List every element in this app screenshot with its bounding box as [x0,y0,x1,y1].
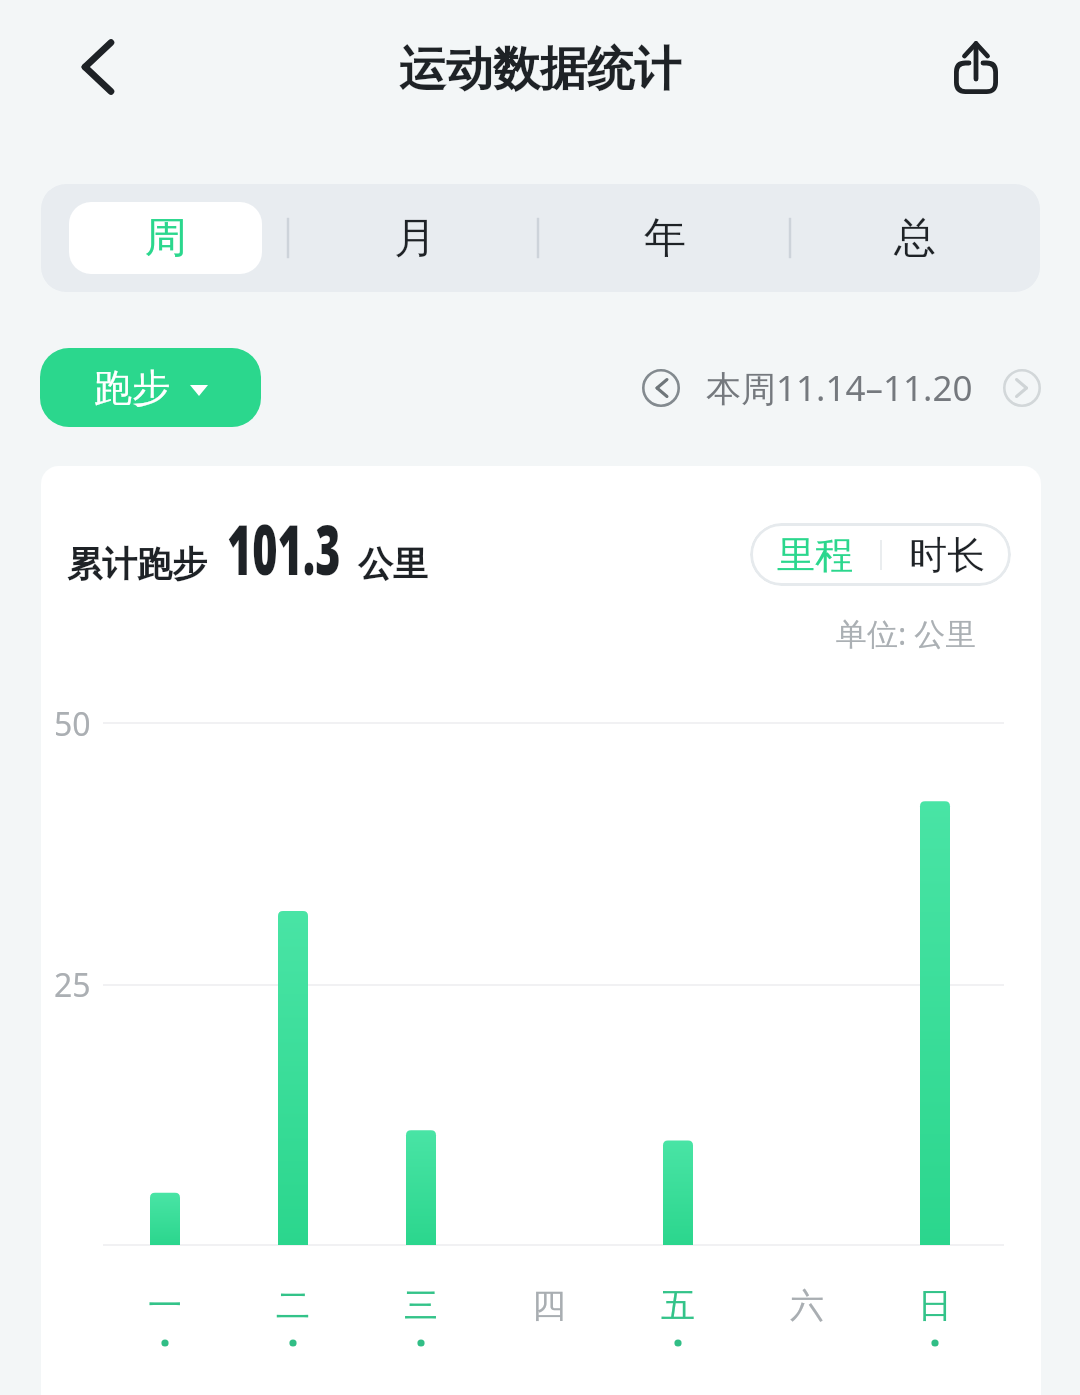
button[interactable]: 二 [261,1266,325,1361]
staticText: 四 [532,1284,566,1327]
staticText: 月 [394,212,436,265]
staticText: 累计跑步 [67,542,207,586]
button[interactable]: 年 [568,202,762,274]
button[interactable]: 五 [646,1266,710,1361]
staticText: 本周11.14–11.20 [706,364,973,412]
staticText: 一 [148,1284,182,1327]
button[interactable]: 六 [775,1266,839,1361]
staticText: 日 [918,1284,952,1327]
staticText: 运动数据统计 [399,40,681,99]
staticText: 总 [894,212,936,265]
button[interactable]: 日 [903,1266,967,1361]
button[interactable]: 周 [69,202,262,274]
button[interactable]: 总 [818,202,1012,274]
staticText: 单位: 公里 [836,612,977,654]
button[interactable]: Share [936,27,1016,107]
staticText: 50 [54,702,91,746]
staticText: 年 [644,212,686,265]
button[interactable]: 四 [517,1266,581,1361]
staticText: 周 [145,212,187,265]
staticText: 25 [54,963,91,1007]
button[interactable]: 跑步 [40,348,261,427]
staticText: 里程 [777,531,853,579]
staticText: 101.3 [227,501,341,595]
staticText: 跑步 [94,364,170,412]
button[interactable]: 月 [318,202,512,274]
staticText: 二 [276,1284,310,1327]
button[interactable]: Previous week [641,368,681,408]
button[interactable]: Back [58,27,138,107]
staticText: 五 [661,1284,695,1327]
staticText: 三 [404,1284,438,1327]
button[interactable]: Next week [1002,368,1042,408]
button[interactable]: 里程 [750,523,1011,586]
staticText: 六 [790,1284,824,1327]
button[interactable]: 三 [389,1266,453,1361]
staticText: 时长 [909,531,985,579]
staticText: 公里 [358,542,428,586]
button[interactable]: 一 [133,1266,197,1361]
